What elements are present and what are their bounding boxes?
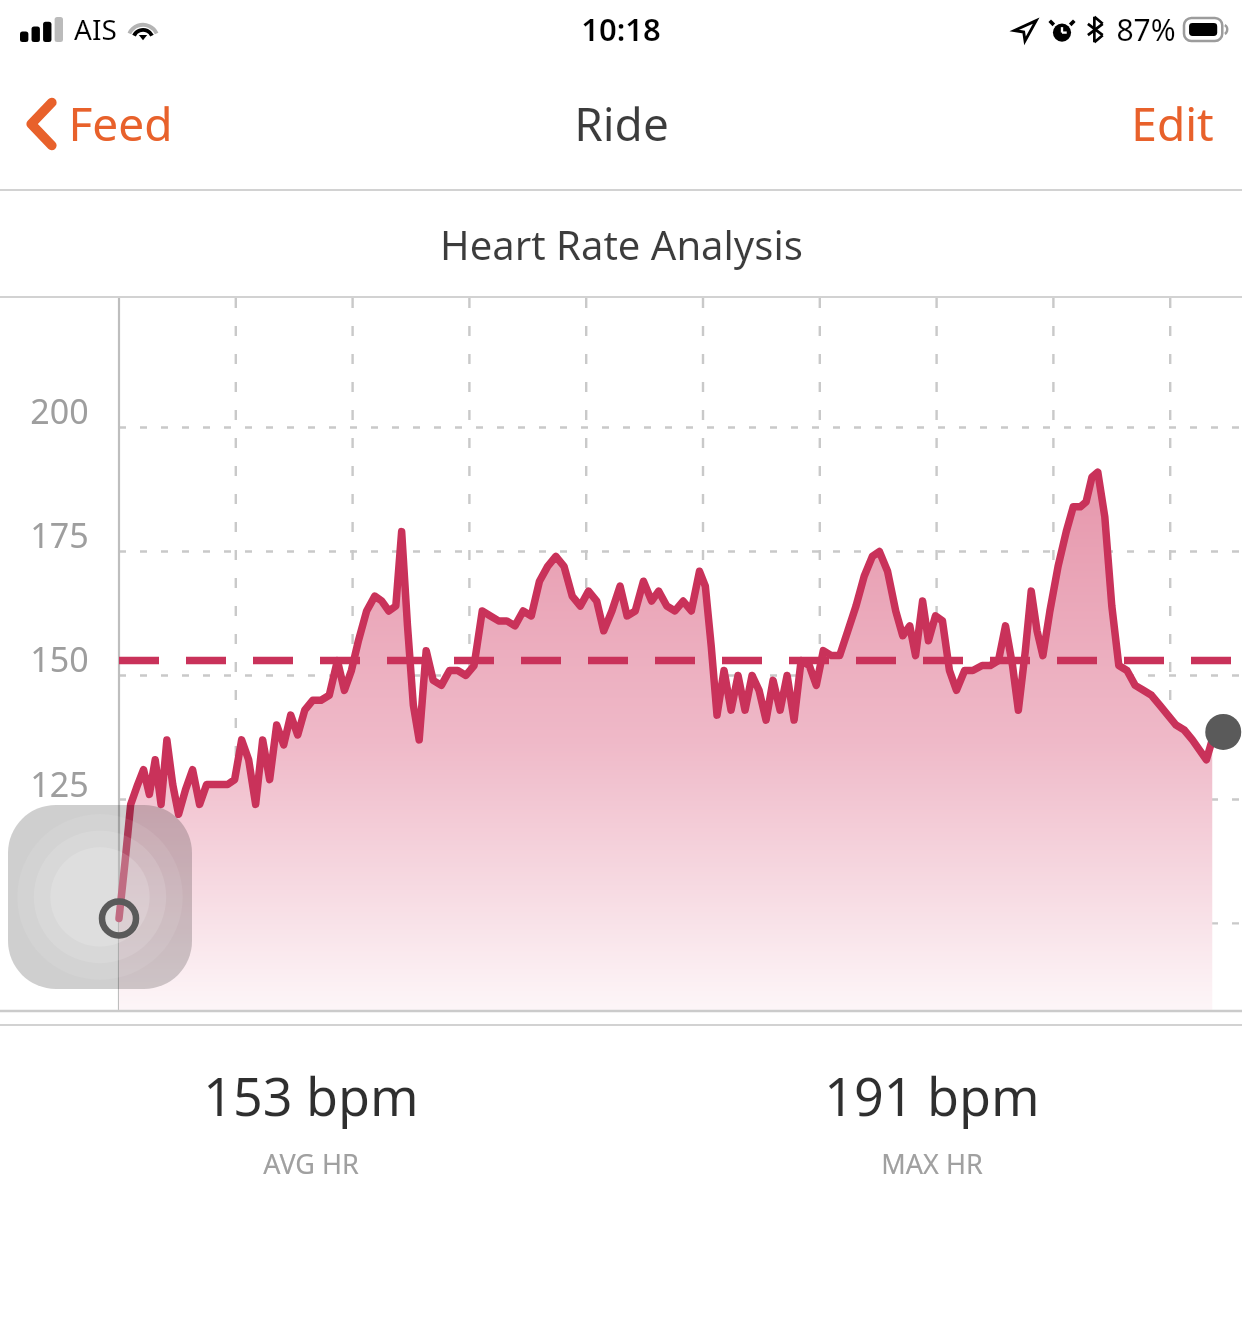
staticText: Heart Rate Analysis: [440, 217, 803, 271]
staticText: AVG HR: [263, 1145, 359, 1182]
staticText: 153 bpm: [203, 1060, 419, 1131]
staticText: Ride: [574, 92, 669, 155]
button[interactable]: Back: [0, 78, 197, 169]
staticText: 150: [30, 636, 89, 682]
staticText: 10:18: [581, 8, 661, 50]
staticText: 200: [30, 388, 89, 434]
other: Back: [28, 99, 55, 149]
button[interactable]: Edit: [1103, 70, 1242, 177]
staticText: 125: [30, 761, 89, 807]
staticText: AIS: [74, 10, 117, 48]
staticText: Feed: [68, 92, 173, 155]
staticText: 87%: [1116, 9, 1176, 50]
staticText: 175: [30, 512, 89, 558]
staticText: MAX HR: [881, 1145, 983, 1182]
staticText: 191 bpm: [824, 1060, 1040, 1131]
button[interactable]: 191 bpm: [621, 1026, 1242, 1216]
staticText: Edit: [1131, 92, 1214, 155]
button[interactable]: 153 bpm: [0, 1026, 621, 1216]
